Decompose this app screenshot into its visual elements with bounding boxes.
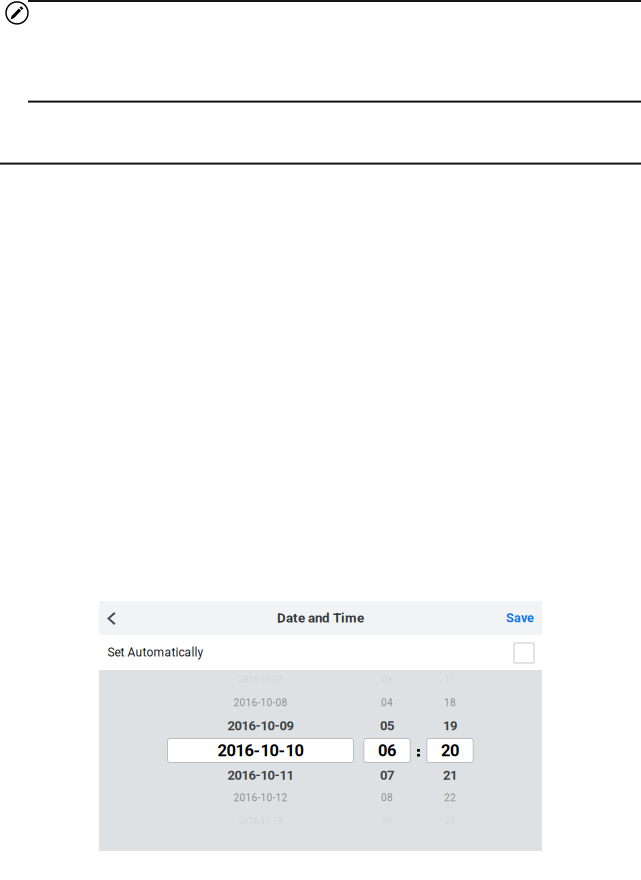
staticText: 21 <box>443 767 457 783</box>
button[interactable]: Save <box>493 601 547 635</box>
staticText: 05 <box>380 718 394 733</box>
staticText: 23 <box>445 816 455 826</box>
staticText: 19 <box>443 718 457 733</box>
staticText: 06 <box>378 741 396 760</box>
staticText: 2016-10-11 <box>227 767 293 783</box>
staticText: Set Automatically <box>107 645 203 660</box>
staticText: Save <box>506 611 534 625</box>
staticText: 22 <box>444 792 456 804</box>
button[interactable]: 20 <box>427 738 473 762</box>
staticText: 07 <box>380 767 394 783</box>
button[interactable]: 06 <box>364 738 410 762</box>
staticText: 2016-10-13 <box>238 816 282 826</box>
staticText: 04 <box>381 697 393 709</box>
button[interactable]: Set Automatically <box>99 635 542 670</box>
staticText: 2016-10-07 <box>238 674 282 685</box>
staticText: 09 <box>382 816 392 826</box>
staticText: 18 <box>444 697 456 709</box>
staticText: 03 <box>382 674 392 685</box>
staticText: 2016-10-09 <box>227 718 293 733</box>
staticText: Date and Time <box>277 610 364 626</box>
staticText: 20 <box>441 741 459 760</box>
staticText: 2016-10-08 <box>233 697 287 709</box>
staticText: 2016-10-12 <box>233 792 287 804</box>
staticText: 08 <box>381 792 393 804</box>
staticText: 2016-10-10 <box>217 741 303 760</box>
button[interactable]: Back <box>96 601 126 635</box>
button[interactable]: 2016-10-10 <box>167 738 353 762</box>
button[interactable]: Edit <box>3 0 31 27</box>
